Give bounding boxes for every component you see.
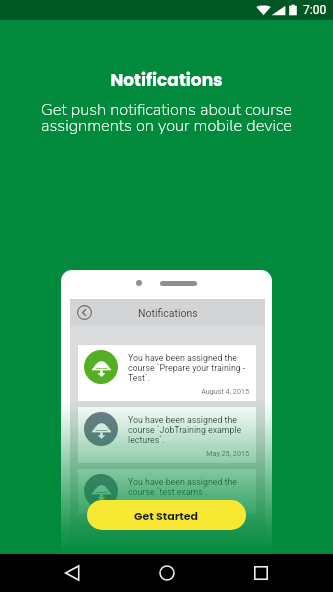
staticText: course `Prepare your training -: [128, 363, 246, 373]
staticText: Notifications: [0, 68, 333, 92]
button[interactable]: Home: [144, 554, 190, 592]
staticText: Test`.: [128, 373, 150, 383]
staticText: course `JobTraining example: [128, 425, 242, 435]
button[interactable]: Recent apps: [238, 554, 284, 592]
staticText: 7:00: [303, 3, 327, 17]
staticText: You have been assigned the: [128, 415, 237, 425]
staticText: May 25, 2015: [128, 449, 249, 457]
staticText: lectures`.: [128, 435, 165, 445]
staticText: You have been assigned the: [128, 477, 237, 487]
staticText: Get push notifications about course assi…: [0, 98, 333, 137]
staticText: Get Started: [134, 508, 199, 523]
staticText: course `test exams`.: [128, 487, 208, 497]
staticText: You have been assigned the: [128, 353, 237, 363]
staticText: August 4, 2015: [128, 387, 249, 395]
button[interactable]: Back: [49, 554, 95, 592]
button[interactable]: Get Started: [87, 500, 246, 530]
staticText: Notifications: [138, 307, 198, 319]
